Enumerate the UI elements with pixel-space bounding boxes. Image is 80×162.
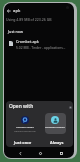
button[interactable]: Back — [16, 149, 24, 157]
staticText: Just once — [14, 140, 32, 145]
button[interactable]: Just once — [6, 137, 40, 147]
staticText: Always — [50, 140, 64, 145]
staticText: apk — [13, 8, 21, 14]
button[interactable]: Recent apps — [57, 149, 65, 157]
staticText: Just now — [8, 29, 24, 34]
button[interactable]: More options — [67, 104, 73, 111]
staticText: 5.02 MB - Tinder - applications... — [16, 45, 66, 49]
button[interactable]: Package installer — [40, 113, 70, 135]
staticText: Package installer — [40, 125, 70, 128]
button[interactable]: Home — [36, 149, 44, 157]
staticText: Crombet.apk — [16, 39, 39, 44]
staticText: Podcast Addict — [10, 125, 40, 128]
staticText: Open with — [9, 103, 34, 110]
button[interactable]: Always — [40, 137, 73, 147]
staticText: Restore backup file — [10, 129, 40, 132]
button[interactable]: Back — [5, 7, 13, 15]
button[interactable]: Crombet.apk — [4, 38, 74, 49]
button[interactable]: Podcast Addict — [10, 113, 40, 135]
staticText: Using 4.89 MB of 223.26 GB — [6, 17, 52, 22]
